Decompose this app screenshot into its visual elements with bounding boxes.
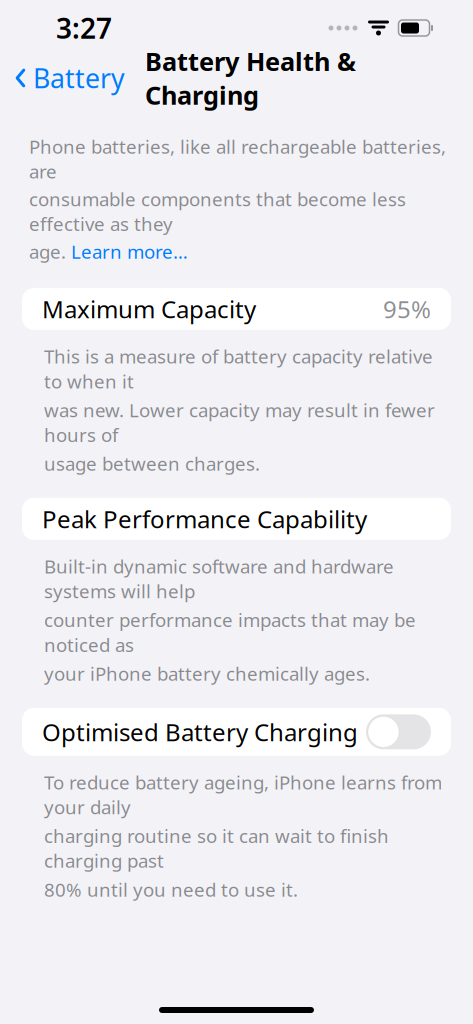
staticText: Optimised Battery Charging: [42, 716, 358, 748]
button[interactable]: Maximum Capacity: [22, 288, 451, 330]
button[interactable]: Optimised Battery Charging: [22, 708, 451, 756]
staticText: Battery: [33, 60, 125, 96]
staticText: Phone batteries, like all rechargeable b…: [29, 134, 446, 184]
staticText: consumable components that become less e…: [29, 187, 406, 236]
staticText: 95%: [383, 293, 431, 325]
staticText: age.: [29, 239, 71, 264]
staticText: This is a measure of battery capacity re…: [44, 344, 433, 394]
staticText: your iPhone battery chemically ages.: [44, 661, 370, 686]
staticText: Peak Performance Capability: [42, 503, 367, 535]
staticText: charging routine so it can wait to finis…: [44, 823, 389, 873]
button[interactable]: Peak Performance Capability: [22, 498, 451, 540]
staticText: Battery Health & Charging: [145, 44, 356, 112]
staticText: 80% until you need to use it.: [44, 877, 298, 902]
staticText: Learn more…: [71, 239, 188, 264]
staticText: Built-in dynamic software and hardware s…: [44, 554, 394, 603]
staticText: To reduce battery ageing, iPhone learns …: [44, 770, 442, 819]
staticText: was new. Lower capacity may result in fe…: [44, 397, 435, 447]
staticText: counter performance impacts that may be …: [44, 607, 416, 657]
button[interactable]: Learn more…: [71, 239, 188, 264]
staticText: 3:27: [56, 9, 112, 47]
staticText: Maximum Capacity: [42, 293, 256, 325]
button[interactable]: Battery: [0, 52, 133, 104]
staticText: usage between charges.: [44, 451, 260, 476]
